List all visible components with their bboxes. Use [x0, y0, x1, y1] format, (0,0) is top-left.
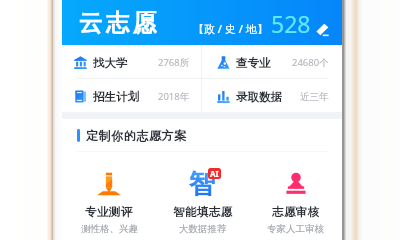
button[interactable]: 录取数据 [202, 79, 342, 112]
button[interactable]: 招生计划 [62, 79, 201, 112]
staticText: 24680个 [292, 56, 329, 69]
staticText: 528 [271, 8, 311, 39]
staticText: 2768所 [158, 56, 190, 69]
staticText: 云志愿 [77, 8, 158, 38]
staticText: AI [210, 168, 219, 179]
staticText: 近三年 [300, 91, 329, 103]
staticText: 测性格、兴趣 [81, 223, 138, 235]
button[interactable]: 找大学 [62, 45, 201, 78]
button[interactable]: 志愿审核 [249, 152, 342, 240]
button[interactable]: 专业测评 [62, 152, 156, 240]
staticText: 专业测评 [85, 205, 133, 219]
staticText: 查专业 [236, 56, 271, 70]
button[interactable]: 智 [156, 152, 249, 240]
button[interactable]: 【政 / 史 / 地】 [193, 7, 329, 38]
staticText: 定制你的志愿方案 [86, 128, 187, 143]
button[interactable]: 查专业 [202, 45, 342, 78]
staticText: 招生计划 [93, 90, 139, 104]
staticText: 【政 / 史 / 地】 [193, 21, 268, 36]
staticText: 专家人工审核 [267, 223, 324, 235]
staticText: 智能填志愿 [173, 205, 233, 219]
staticText: 录取数据 [236, 90, 282, 104]
staticText: 2018年 [158, 90, 190, 103]
staticText: 志愿审核 [272, 205, 320, 219]
staticText: 大数据推荐 [179, 223, 227, 235]
other: Edit score [316, 23, 329, 36]
staticText: 智 [189, 167, 216, 200]
staticText: 找大学 [93, 56, 128, 70]
